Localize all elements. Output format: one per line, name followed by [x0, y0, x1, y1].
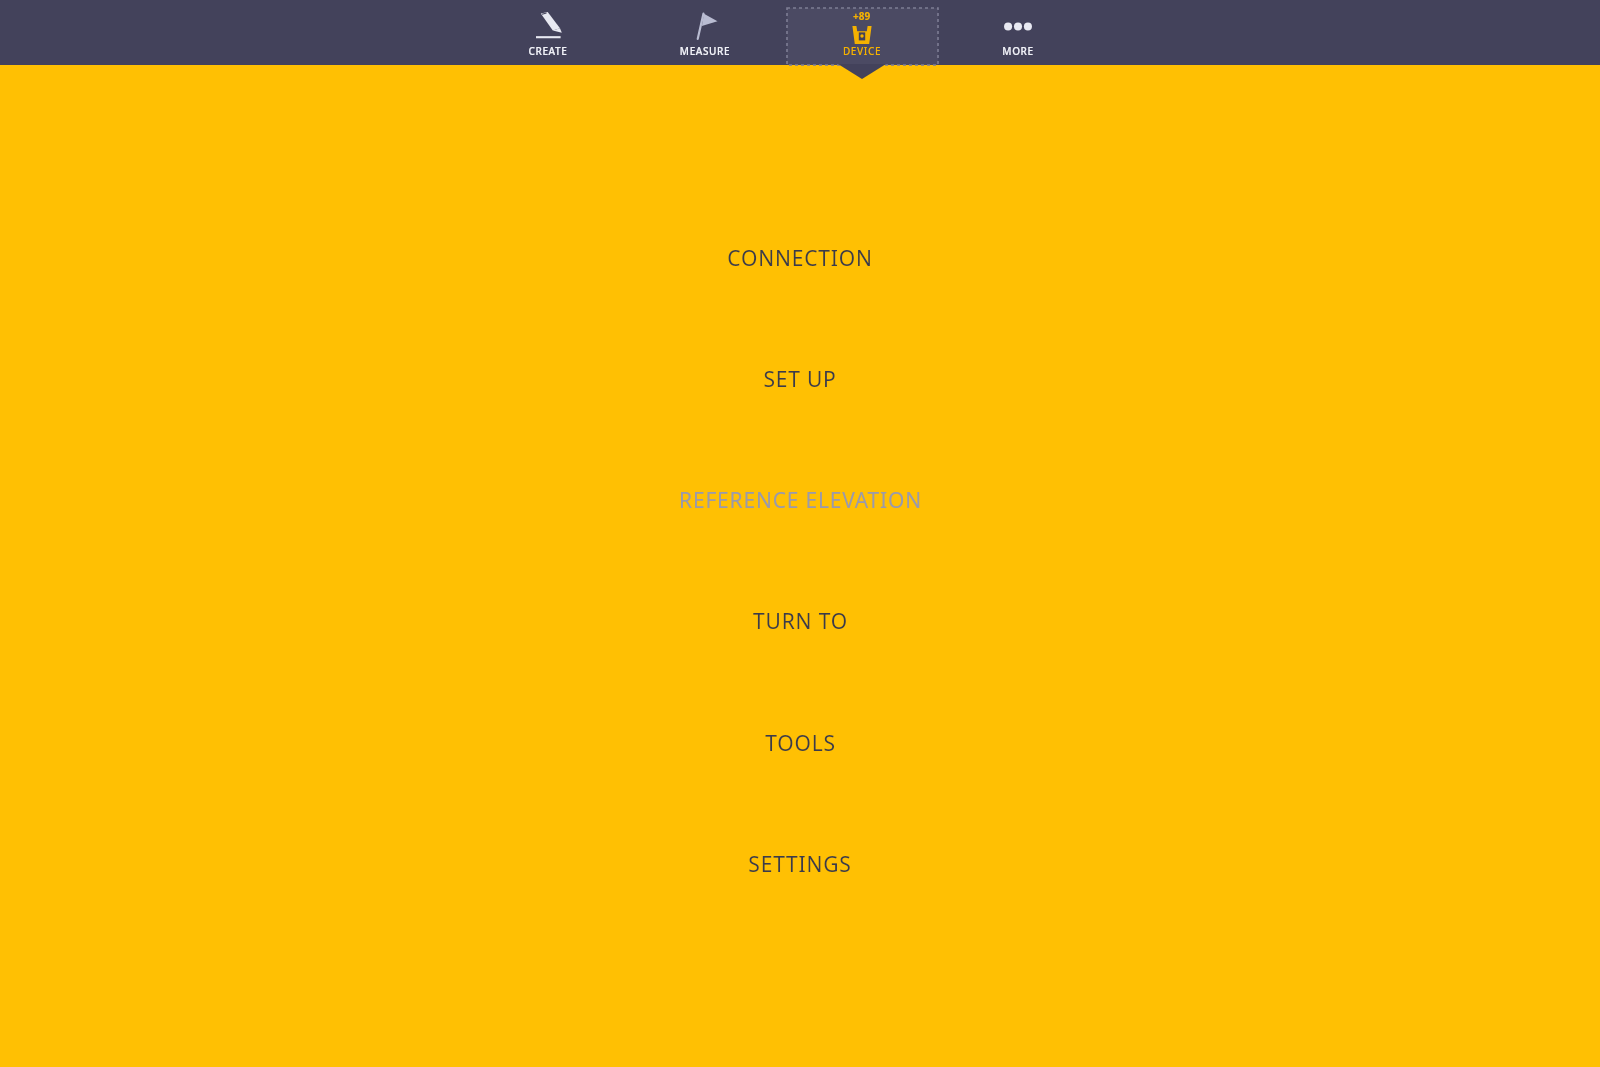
- staticText: +89: [853, 9, 871, 23]
- other: Create: [533, 12, 563, 40]
- staticText: DEVICE: [802, 44, 922, 58]
- button[interactable]: CONNECTION: [0, 227, 1600, 289]
- staticText: MORE: [958, 44, 1078, 58]
- other: More: [1002, 13, 1034, 39]
- button[interactable]: SETTINGS: [0, 833, 1600, 895]
- staticText: CONNECTION: [727, 244, 873, 273]
- staticText: SET UP: [763, 365, 837, 394]
- button[interactable]: More: [958, 8, 1078, 65]
- button[interactable]: TOOLS: [0, 712, 1600, 774]
- button[interactable]: TURN TO: [0, 590, 1600, 652]
- staticText: TOOLS: [765, 729, 836, 758]
- button: REFERENCE ELEVATION: [0, 469, 1600, 531]
- staticText: CREATE: [488, 44, 608, 58]
- button[interactable]: SET UP: [0, 348, 1600, 410]
- staticText: SETTINGS: [748, 850, 852, 879]
- button[interactable]: Create: [488, 8, 608, 65]
- staticText: MEASURE: [645, 44, 765, 58]
- staticText: REFERENCE ELEVATION: [679, 486, 922, 515]
- staticText: TURN TO: [753, 607, 848, 636]
- other: Measure: [692, 12, 718, 40]
- button[interactable]: Measure: [645, 8, 765, 65]
- other: Device: [852, 9, 872, 44]
- button[interactable]: Device: [802, 8, 922, 65]
